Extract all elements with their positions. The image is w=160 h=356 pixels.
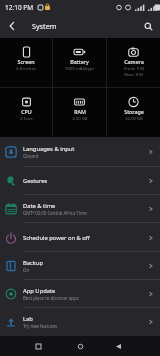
button[interactable]: Back <box>0 14 24 38</box>
staticText: On <box>23 267 30 273</box>
staticText: Gboard <box>23 153 39 159</box>
button[interactable]: Storage <box>107 88 160 122</box>
button[interactable]: Screen <box>0 38 52 72</box>
staticText: App Update <box>23 287 56 295</box>
staticText: 5000 mAh(typ) <box>65 66 94 72</box>
button[interactable]: Back <box>108 336 128 356</box>
staticText: GMT+02:00 Central Africa Time <box>23 210 87 216</box>
staticText: Schedule power on & off <box>23 234 90 242</box>
button[interactable]: Schedule power on & off <box>0 223 160 252</box>
staticText: 32.00 GB <box>125 116 143 122</box>
button[interactable]: Backup <box>0 252 160 280</box>
staticText: Battery <box>70 58 89 65</box>
button[interactable]: Home <box>70 336 90 356</box>
button[interactable]: Lab <box>0 308 160 336</box>
staticText: Best place to discover apps <box>23 295 79 301</box>
staticText: Storage <box>124 108 144 115</box>
staticText: Lab <box>23 315 33 323</box>
staticText: 6.8 inches <box>16 66 36 72</box>
staticText: Languages & input <box>23 145 75 153</box>
staticText: Date & time <box>23 202 56 210</box>
staticText: 4 Core <box>20 116 33 122</box>
button[interactable]: Battery <box>53 38 106 72</box>
staticText: CPU <box>21 108 32 115</box>
staticText: Screen <box>17 58 35 65</box>
button[interactable]: Date & time <box>0 195 160 223</box>
button[interactable]: App Update <box>0 280 160 308</box>
button[interactable]: Camera <box>107 38 160 78</box>
staticText: Front: 5 M <box>124 66 144 72</box>
button[interactable]: Search <box>136 14 160 38</box>
staticText: Gestures <box>23 177 48 185</box>
staticText: 12:10 PM <box>5 3 34 12</box>
staticText: RAM <box>74 108 86 115</box>
button[interactable]: Recents <box>28 336 48 356</box>
button[interactable]: Languages & input <box>0 137 160 167</box>
button[interactable]: CPU <box>0 88 52 122</box>
staticText: Camera <box>124 58 144 65</box>
staticText: Rear: 8 M <box>124 72 143 78</box>
staticText: 2.00 GB <box>72 116 88 122</box>
staticText: Backup <box>23 259 44 267</box>
staticText: Try new features <box>23 323 58 329</box>
staticText: System <box>32 21 57 31</box>
button[interactable]: RAM <box>53 88 106 122</box>
button[interactable]: Gestures <box>0 167 160 195</box>
